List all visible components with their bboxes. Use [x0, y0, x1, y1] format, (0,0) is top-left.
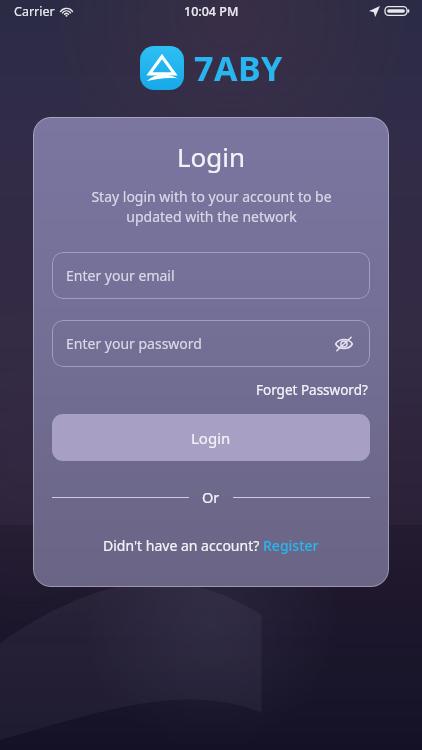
staticText: Enter your password	[66, 334, 332, 353]
button[interactable]: Enter your password	[52, 320, 370, 367]
staticText: Login	[177, 139, 246, 174]
staticText: Forget Password?	[256, 381, 368, 399]
staticText: 10:04 PM	[184, 3, 239, 20]
staticText: Register	[263, 536, 319, 555]
button[interactable]: Enter your email	[52, 252, 370, 299]
button[interactable]: Login	[52, 414, 370, 461]
button[interactable]: Show password	[332, 332, 356, 356]
button[interactable]: Forget Password?	[254, 378, 370, 402]
staticText: Or	[202, 487, 220, 507]
staticText: Login	[191, 428, 231, 448]
other: 7ABY logo	[140, 46, 184, 90]
staticText: Enter your email	[66, 266, 356, 285]
staticText: 7ABY	[194, 45, 283, 91]
button[interactable]: Didn't have an account?	[101, 533, 321, 558]
staticText: Stay login with to your account to be up…	[91, 187, 332, 227]
staticText: Didn't have an account?	[103, 536, 263, 555]
staticText: Carrier	[14, 3, 55, 20]
